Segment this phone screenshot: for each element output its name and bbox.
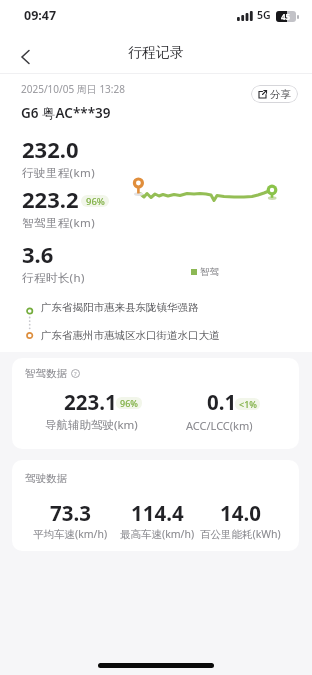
staticText: 96% [120, 397, 138, 409]
staticText: 百公里能耗(kWh) [200, 527, 281, 541]
staticText: 导航辅助驾驶(km) [45, 417, 138, 433]
staticText: 09:47 [24, 7, 57, 24]
staticText: ACC/LCC(km) [186, 418, 253, 433]
staticText: 45 [281, 11, 291, 22]
staticText: 驾驶数据 [25, 472, 67, 485]
staticText: 分享 [270, 88, 291, 101]
staticText: 行程记录 [128, 44, 184, 62]
staticText: 223.2 [22, 184, 79, 214]
button[interactable]: 广东省揭阳市惠来县东陇镇华强路 [0, 0, 158, 13]
button[interactable]: 分享 [251, 85, 298, 103]
staticText: G6 粤AC***39 [21, 104, 111, 122]
staticText: 5G [257, 8, 271, 22]
staticText: 智驾数据 [25, 367, 67, 380]
staticText: <1% [239, 398, 257, 410]
staticText: 0.1 [207, 388, 237, 416]
staticText: 智驾 [200, 266, 219, 278]
staticText: 2025/10/05 周日 13:28 [21, 82, 125, 96]
button[interactable]: 广东省惠州市惠城区水口街道水口大道 [0, 0, 179, 13]
staticText: 232.0 [22, 134, 79, 164]
staticText: ? [74, 370, 77, 378]
staticText: 智驾里程(km) [22, 215, 95, 231]
staticText: 223.1 [64, 388, 117, 416]
staticText: 3.6 [22, 239, 54, 269]
button[interactable]: 智驾数据 [25, 367, 81, 380]
staticText: 平均车速(km/h) [33, 527, 108, 541]
staticText: 14.0 [220, 499, 261, 527]
staticText: 行驶里程(km) [22, 165, 95, 181]
staticText: 最高车速(km/h) [120, 527, 195, 541]
staticText: 73.3 [50, 499, 91, 527]
staticText: 行程时长(h) [22, 270, 85, 286]
staticText: 96% [86, 195, 105, 207]
staticText: 114.4 [131, 499, 184, 527]
button[interactable] [12, 44, 38, 70]
